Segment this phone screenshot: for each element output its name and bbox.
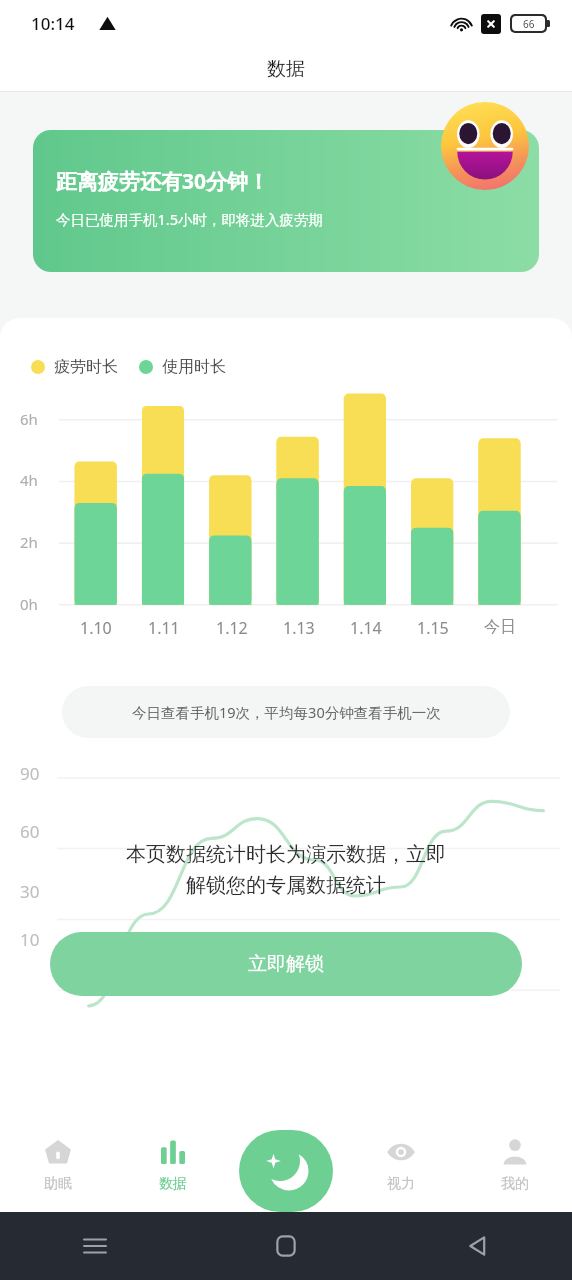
staticText: 疲劳时长 xyxy=(54,357,118,377)
staticText: 立即解锁 xyxy=(248,952,324,976)
staticText: 1.11 xyxy=(148,617,180,639)
button[interactable]: Sleep mode xyxy=(239,1130,333,1212)
staticText: 今日已使用手机1.5小时，即将进入疲劳期 xyxy=(56,209,323,229)
staticText: 1.13 xyxy=(283,617,315,639)
staticText: 10 xyxy=(20,928,40,951)
button[interactable]: 距离疲劳还有30分钟！ xyxy=(33,130,539,272)
staticText: 使用时长 xyxy=(162,357,226,377)
staticText: 30 xyxy=(20,880,40,903)
other: Wi-Fi xyxy=(451,13,472,34)
button[interactable]: 立即解锁 xyxy=(50,932,522,996)
staticText: 距离疲劳还有30分钟！ xyxy=(56,167,270,196)
other: Back xyxy=(465,1234,489,1258)
staticText: 数据 xyxy=(159,1175,187,1193)
staticText: 1.15 xyxy=(417,617,449,639)
staticText: 助眠 xyxy=(44,1175,72,1193)
button[interactable]: 视力 xyxy=(344,1112,458,1212)
staticText: 66 xyxy=(523,17,535,31)
other: Recents xyxy=(82,1233,108,1259)
staticText: 本页数据统计时长为演示数据，立即 解锁您的专属数据统计 xyxy=(126,842,446,898)
staticText: 60 xyxy=(20,820,40,843)
staticText: 6h xyxy=(20,409,38,429)
staticText: 10:14 xyxy=(31,12,75,35)
button[interactable]: 今日查看手机19次，平均每30分钟查看手机一次 xyxy=(62,686,510,738)
staticText: 1.10 xyxy=(80,617,112,639)
button[interactable]: 我的 xyxy=(458,1112,572,1212)
staticText: 2h xyxy=(20,532,38,552)
staticText: 视力 xyxy=(387,1175,415,1193)
other: Warning xyxy=(99,15,116,32)
button[interactable]: 数据 xyxy=(115,1112,230,1212)
other: Home xyxy=(274,1234,298,1258)
staticText: 1.12 xyxy=(216,617,248,639)
staticText: 1.14 xyxy=(350,617,382,639)
staticText: 今日 xyxy=(484,617,516,637)
staticText: 今日查看手机19次，平均每30分钟查看手机一次 xyxy=(132,702,441,722)
staticText: 我的 xyxy=(501,1175,529,1193)
staticText: 0h xyxy=(20,594,38,614)
button[interactable]: 助眠 xyxy=(0,1112,115,1212)
staticText: 数据 xyxy=(267,57,305,81)
staticText: 4h xyxy=(20,470,38,490)
staticText: 90 xyxy=(20,762,40,785)
